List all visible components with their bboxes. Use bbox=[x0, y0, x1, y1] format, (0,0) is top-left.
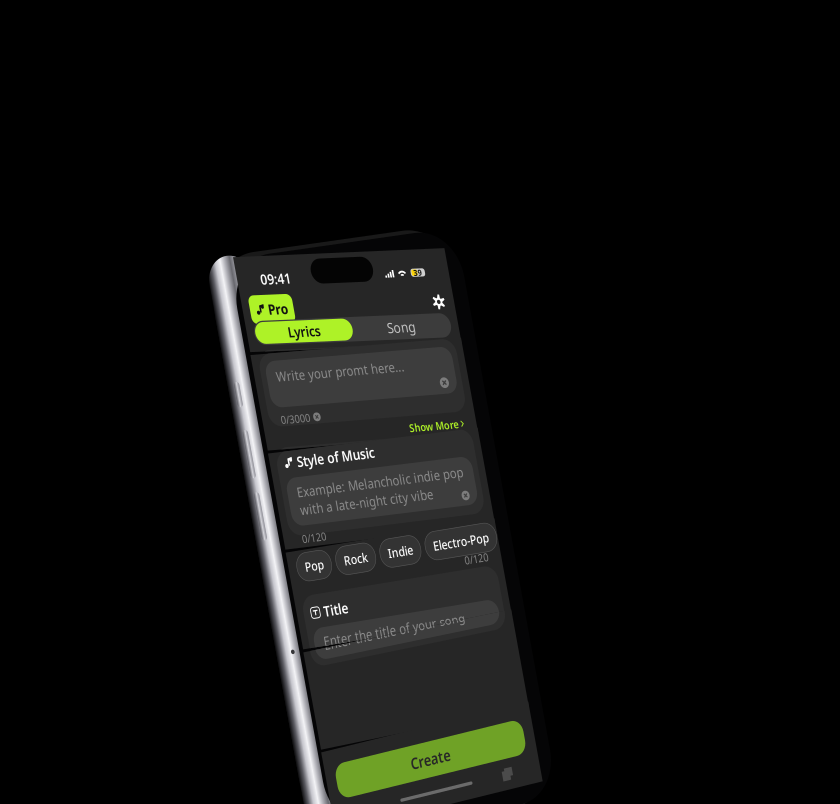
staticText: Electro-Pop bbox=[278, 314, 385, 340]
button[interactable]: Electro-Pop bbox=[263, 457, 400, 501]
staticText: R&B bbox=[424, 314, 465, 340]
staticText: Electro-Pop bbox=[278, 466, 385, 492]
button[interactable]: Create bbox=[19, 473, 383, 527]
button[interactable]: Electro-Pop bbox=[263, 305, 400, 349]
button[interactable]: R&B bbox=[409, 457, 480, 501]
button[interactable]: Indie bbox=[176, 457, 254, 501]
button[interactable]: Show More bbox=[274, 275, 378, 298]
button[interactable]: Indie bbox=[176, 305, 254, 349]
staticText: Enter the title of your song bbox=[41, 583, 313, 611]
staticText: 0/120 bbox=[332, 497, 378, 520]
staticText: R&B bbox=[424, 466, 465, 492]
staticText: 0/120 bbox=[332, 345, 378, 368]
button[interactable]: Create bbox=[19, 775, 383, 804]
button[interactable]: R&B bbox=[409, 305, 480, 349]
button[interactable]: Create bbox=[19, 323, 383, 377]
staticText: Example: Melancholic indie pop with a la… bbox=[41, 353, 360, 410]
staticText: Create bbox=[162, 334, 239, 366]
staticText: Show More bbox=[274, 275, 368, 298]
staticText: Indie bbox=[191, 314, 239, 340]
staticText: Example: Melancholic indie pop with a la… bbox=[41, 201, 360, 258]
button[interactable]: Create bbox=[19, 623, 383, 677]
staticText: Enter the title of your song bbox=[41, 431, 313, 459]
staticText: Enter the title of your song bbox=[41, 281, 313, 309]
